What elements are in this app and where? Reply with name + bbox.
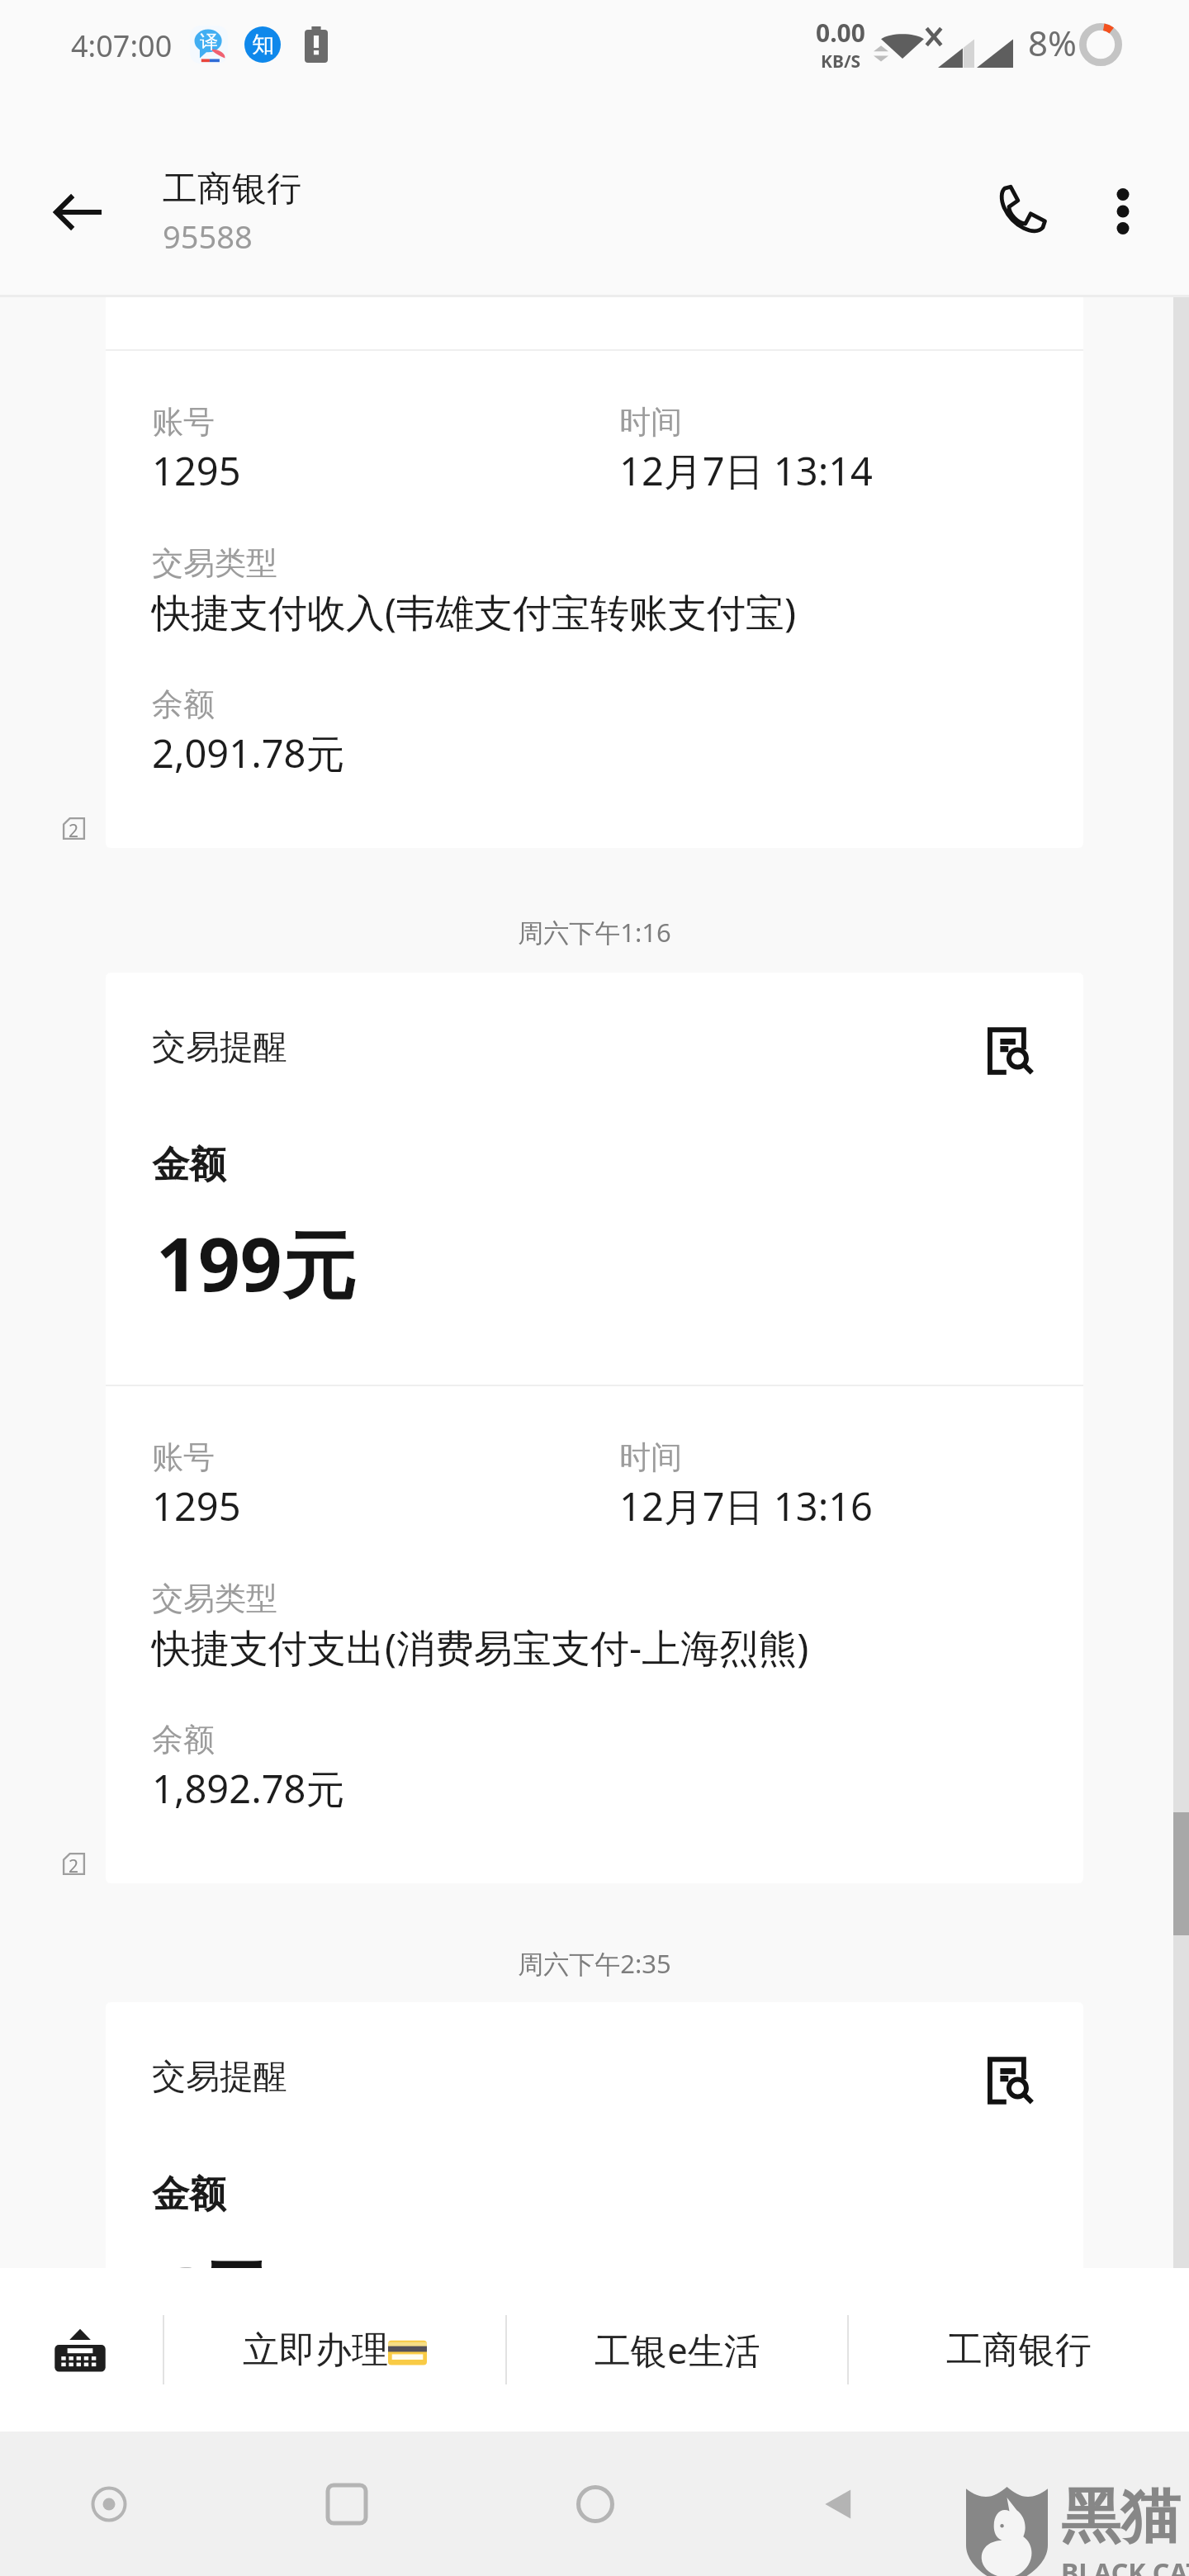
button[interactable]: 工银e生活 — [507, 2268, 847, 2432]
staticText: 8% — [1028, 19, 1077, 66]
staticText: 周六下午2:35 — [0, 1946, 1189, 1981]
staticText: 时间 — [619, 402, 682, 442]
staticText: 交易提醒 — [152, 1026, 287, 1069]
staticText: 1,892.78元 — [152, 1762, 345, 1815]
staticText: 12月7日 13:16 — [619, 1480, 874, 1532]
staticText: 译 — [200, 31, 218, 54]
staticText: 交易类型 — [152, 543, 277, 583]
staticText: 1295 — [152, 1480, 241, 1532]
button[interactable]: More options — [1078, 167, 1168, 256]
staticText: 余额 — [152, 684, 215, 724]
staticText: 账号 — [152, 1437, 215, 1477]
button[interactable]: 账号 — [106, 297, 1083, 848]
staticText: 账号 — [152, 402, 215, 442]
staticText: 知 — [252, 31, 274, 59]
staticText: 立即办理 — [243, 2327, 388, 2373]
staticText: 95588 — [163, 215, 253, 258]
button[interactable]: Back — [798, 2463, 881, 2545]
staticText: 快捷支付支出(消费易宝支付-上海烈熊) — [152, 1621, 809, 1674]
staticText: 黑猫 — [1061, 2479, 1180, 2555]
staticText: 2,091.78元 — [152, 727, 345, 779]
button[interactable]: 立即办理 — [164, 2268, 505, 2432]
staticText: 2 — [69, 1854, 79, 1878]
staticText: 199元 — [156, 1213, 356, 1314]
button[interactable]: Show keyboard — [39, 2308, 121, 2391]
staticText: 金额 — [152, 2171, 226, 2218]
button[interactable]: 工商银行 — [849, 2268, 1189, 2432]
staticText: 4:07:00 — [71, 26, 173, 66]
button[interactable]: 交易提醒 — [106, 973, 1083, 1883]
staticText: BLACK CAT — [1061, 2555, 1189, 2576]
staticText: 周六下午1:16 — [0, 915, 1189, 949]
staticText: 2 — [69, 819, 79, 843]
button[interactable]: Back — [32, 167, 123, 258]
staticText: 金额 — [152, 1142, 226, 1189]
button[interactable]: 交易提醒 — [106, 2002, 1083, 2268]
staticText: 工银e生活 — [594, 2325, 760, 2375]
staticText: 6元 — [156, 2242, 272, 2268]
staticText: 1295 — [152, 444, 241, 497]
button[interactable]: Recent apps — [306, 2463, 388, 2545]
staticText: KB/S — [821, 50, 861, 73]
staticText: 12月7日 13:14 — [619, 444, 874, 497]
staticText: 交易类型 — [152, 1579, 277, 1618]
staticText: 交易提醒 — [152, 2056, 287, 2099]
staticText: 快捷支付收入(韦雄支付宝转账支付宝) — [152, 585, 797, 638]
button[interactable]: View transaction details — [978, 1018, 1045, 1084]
staticText: 余额 — [152, 1720, 215, 1759]
button[interactable]: View transaction details — [978, 2048, 1045, 2114]
staticText: 时间 — [619, 1437, 682, 1477]
button[interactable]: Call — [973, 162, 1071, 259]
staticText: 0.00 — [816, 16, 865, 50]
button[interactable]: Home — [554, 2463, 637, 2545]
staticText: 工商银行 — [163, 168, 301, 211]
button[interactable]: Assistant — [68, 2463, 150, 2545]
staticText: 工商银行 — [946, 2327, 1092, 2373]
